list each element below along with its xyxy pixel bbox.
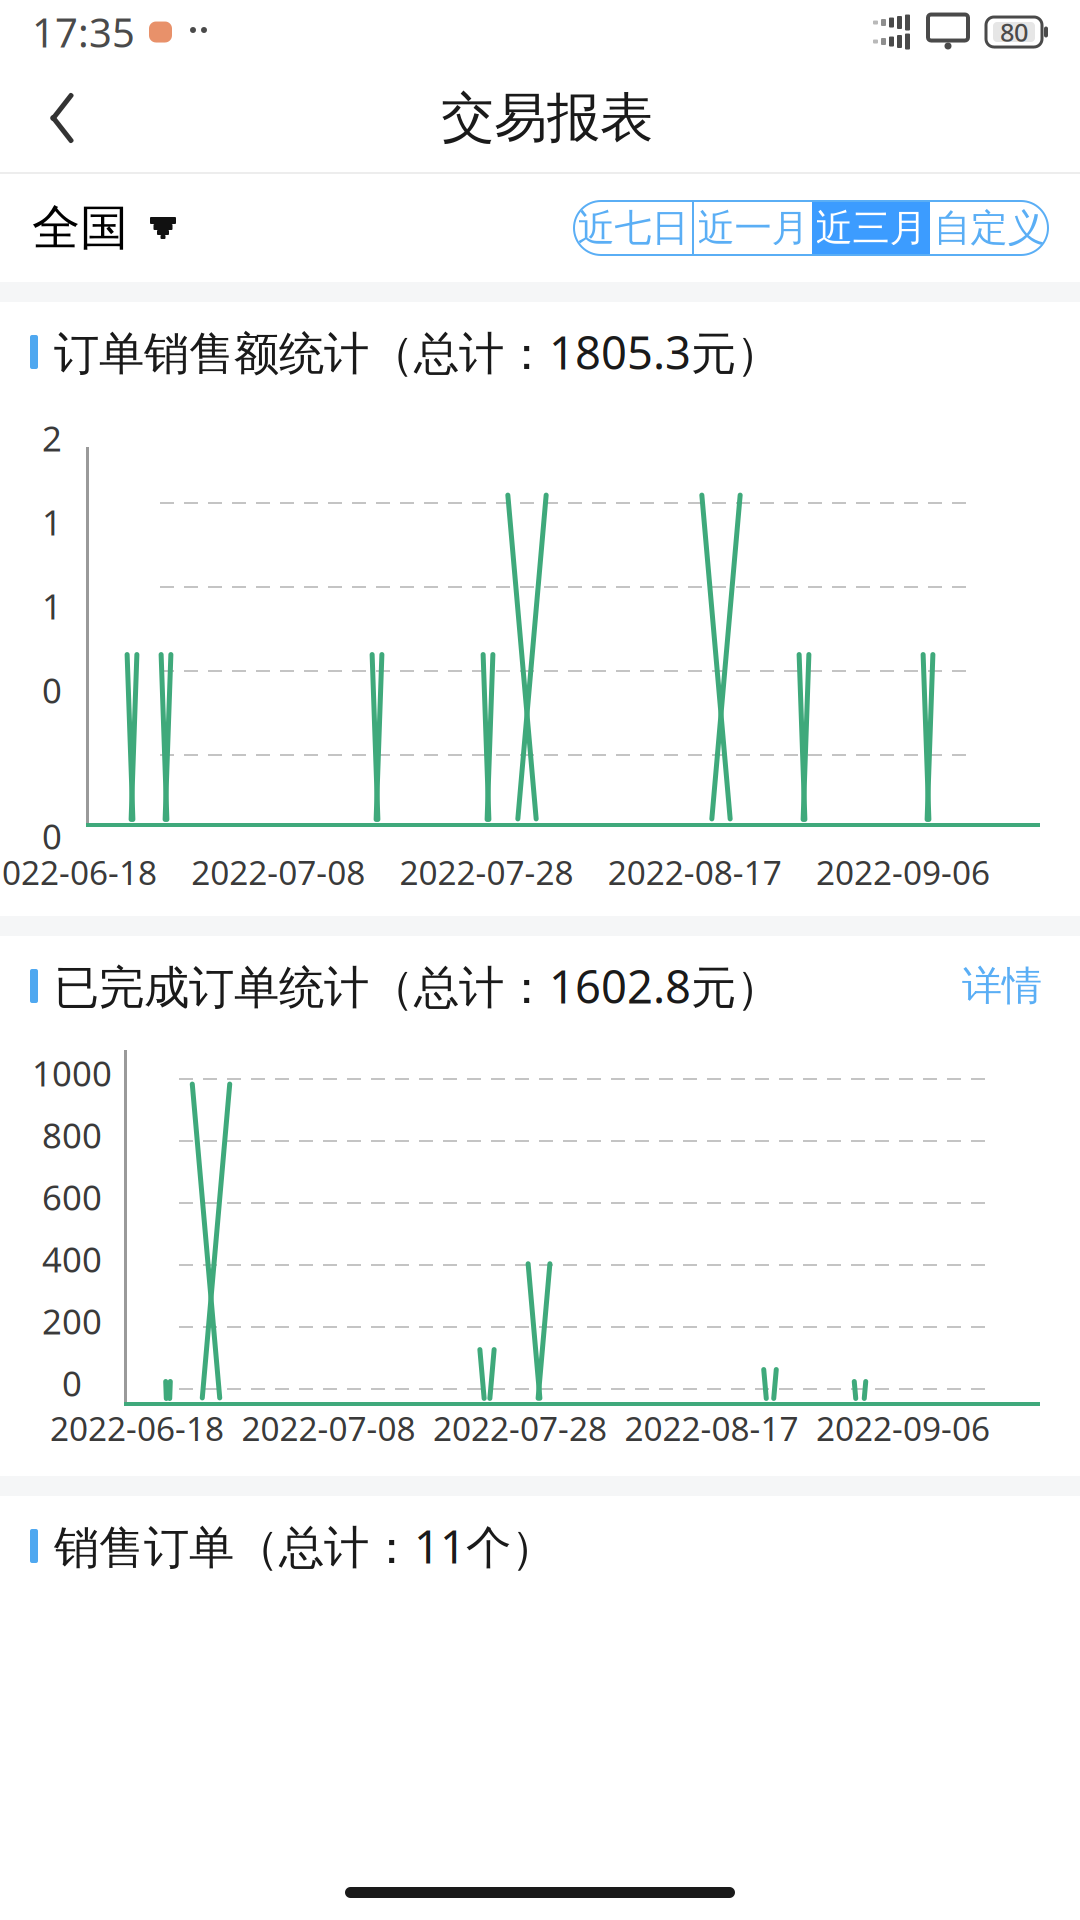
staticText: 近一月 <box>697 205 808 251</box>
staticText: 800 <box>42 1112 102 1158</box>
staticText: 200 <box>42 1298 102 1344</box>
staticText: 近七日 <box>577 205 688 251</box>
staticText: 17:35 <box>32 5 135 58</box>
staticText: 0 <box>42 813 62 859</box>
staticText: 2022-09-06 <box>816 1406 990 1450</box>
staticText: 400 <box>42 1236 102 1282</box>
staticText: 80 <box>1000 15 1028 49</box>
staticText: 0 <box>62 1360 82 1406</box>
staticText: 1000 <box>32 1050 112 1096</box>
staticText: 2 <box>42 415 62 461</box>
staticText: 2022-07-08 <box>241 1406 415 1450</box>
staticText: 1 <box>42 499 62 545</box>
staticText: 022-06-18 <box>2 850 157 894</box>
staticText: 全国 <box>32 198 128 257</box>
staticText: 0 <box>42 667 62 713</box>
staticText: 2022-07-28 <box>433 1406 607 1450</box>
staticText: 2022-09-06 <box>816 850 990 894</box>
staticText: 近三月 <box>815 205 926 251</box>
staticText: 2022-07-28 <box>399 850 573 894</box>
staticText: 2022-07-08 <box>191 850 365 894</box>
staticText: 2022-08-17 <box>624 1406 798 1450</box>
button[interactable]: 详情 <box>956 951 1048 1020</box>
staticText: 已完成订单统计（总计：1602.8元） <box>54 956 781 1016</box>
button[interactable]: 近三月 <box>812 201 930 255</box>
button[interactable]: 近一月 <box>694 201 812 255</box>
staticText: 自定义 <box>933 205 1044 251</box>
staticText: 2022-06-18 <box>50 1406 224 1450</box>
button[interactable]: 近七日 <box>574 201 692 255</box>
button[interactable]: 自定义 <box>930 201 1048 255</box>
staticText: 详情 <box>962 961 1042 1010</box>
button[interactable]: 返回 <box>14 70 110 166</box>
staticText: 1 <box>42 583 62 629</box>
staticText: 600 <box>42 1174 102 1220</box>
staticText: 订单销售额统计（总计：1805.3元） <box>54 322 781 382</box>
staticText: 交易报表 <box>441 85 653 151</box>
staticText: 2022-08-17 <box>608 850 782 894</box>
staticText: 销售订单（总计：11个） <box>54 1516 556 1576</box>
button[interactable]: 全国 <box>0 188 194 268</box>
